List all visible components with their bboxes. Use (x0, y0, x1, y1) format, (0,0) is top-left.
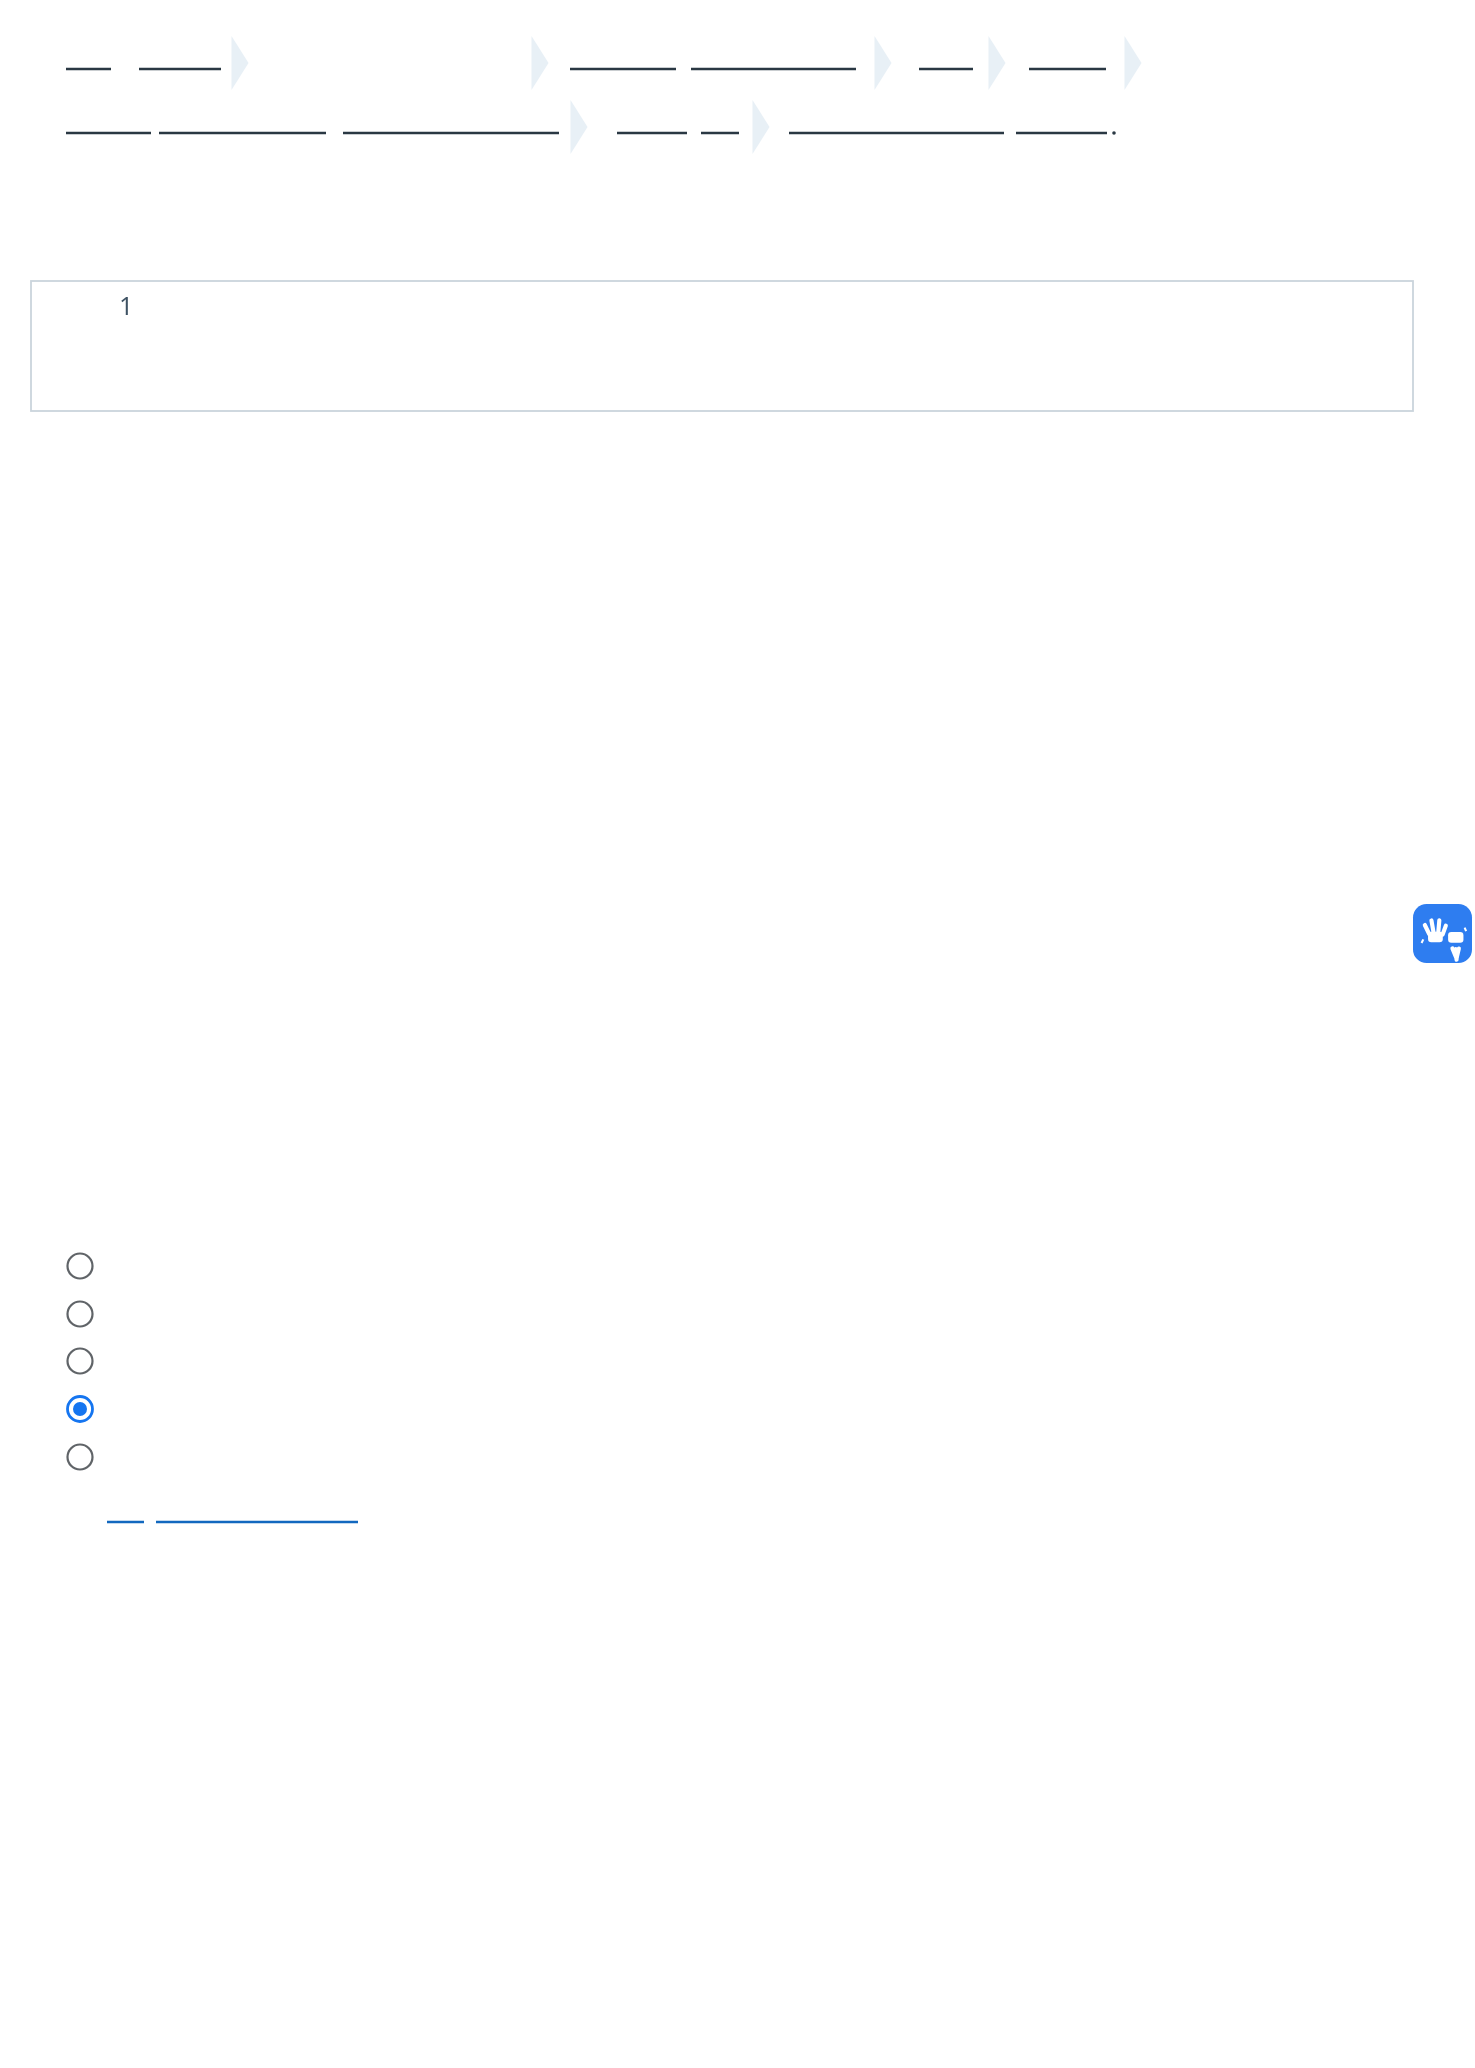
button[interactable]: Option 2 (60, 1296, 1410, 1332)
button[interactable]: Option 5 (60, 1439, 1410, 1475)
button[interactable]: Answer field (31, 281, 1413, 411)
button[interactable]: Option 3 (60, 1343, 1410, 1379)
button[interactable]: Option 1 (60, 1248, 1410, 1284)
staticText: 1 (119, 288, 134, 322)
button[interactable]: Footer link (105, 1504, 360, 1532)
button[interactable]: Option 4 (60, 1391, 1410, 1427)
button[interactable]: Sign language accessibility (1413, 904, 1472, 963)
